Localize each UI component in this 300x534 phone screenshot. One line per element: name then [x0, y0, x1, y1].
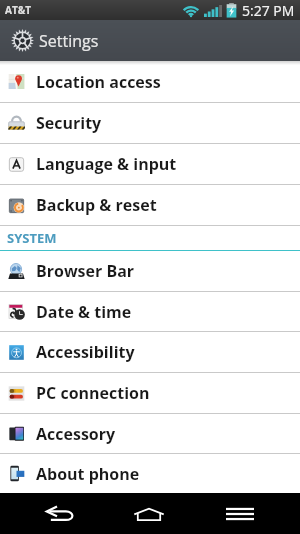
staticText: AT&T	[5, 3, 31, 17]
staticText: PC connection	[36, 382, 150, 404]
button[interactable]: Backup & reset	[0, 185, 300, 225]
staticText: Language & input	[36, 153, 177, 175]
staticText: 5:27 PM	[242, 1, 295, 20]
staticText: Accessibility	[36, 341, 135, 363]
button[interactable]: Language & input	[0, 144, 300, 184]
staticText: Date & time	[36, 301, 132, 323]
staticText: Settings	[39, 30, 99, 52]
staticText: Security	[36, 112, 102, 134]
button[interactable]: Location access	[0, 61, 300, 102]
button[interactable]: Back	[0, 493, 100, 534]
staticText: Browser Bar	[36, 260, 135, 282]
button[interactable]: About phone	[0, 454, 300, 493]
button[interactable]: Home	[100, 493, 189, 534]
staticText: Location access	[36, 71, 161, 93]
staticText: SYSTEM	[7, 229, 57, 247]
button[interactable]: Accessibility	[0, 332, 300, 372]
button[interactable]: Settings	[0, 20, 300, 61]
button[interactable]: Date & time	[0, 292, 300, 331]
staticText: Backup & reset	[36, 194, 157, 216]
button[interactable]: PC connection	[0, 373, 300, 413]
staticText: About phone	[36, 463, 140, 485]
button[interactable]: Browser Bar	[0, 251, 300, 291]
staticText: Accessory	[36, 423, 116, 445]
button[interactable]: Security	[0, 103, 300, 143]
button[interactable]: Menu	[189, 493, 300, 534]
button[interactable]: Accessory	[0, 414, 300, 453]
